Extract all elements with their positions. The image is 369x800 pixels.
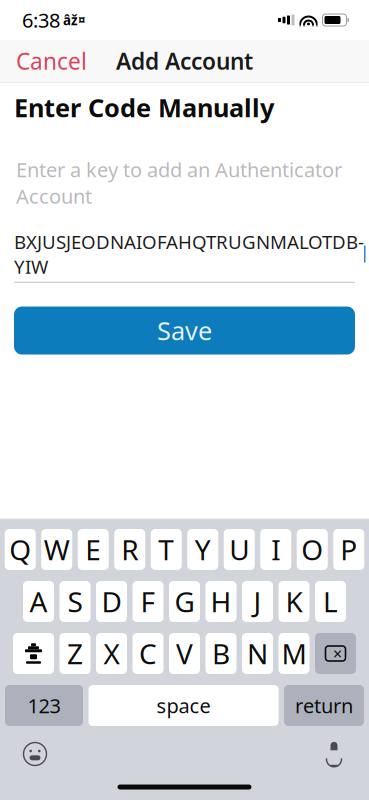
staticText: S	[67, 583, 82, 620]
button[interactable]: A	[23, 581, 54, 622]
staticText: A	[29, 583, 47, 620]
staticText: Y	[195, 531, 211, 568]
button[interactable]: return	[284, 685, 364, 726]
button[interactable]: M	[278, 633, 309, 674]
button[interactable]: Z	[59, 633, 90, 674]
staticText: R	[121, 531, 138, 568]
staticText: Enter a key to add an Authenticator Acco…	[16, 156, 342, 209]
staticText: 123	[27, 692, 60, 719]
staticText: L	[323, 583, 338, 620]
staticText: H	[210, 583, 231, 620]
button[interactable]: P	[333, 529, 364, 570]
button[interactable]: J	[242, 581, 273, 622]
button[interactable]: Cancel	[0, 36, 103, 86]
staticText: V	[176, 635, 193, 672]
button[interactable]: B	[205, 633, 236, 674]
button[interactable]: K	[278, 581, 309, 622]
staticText: W	[44, 531, 70, 568]
button[interactable]: Emoji keyboard	[0, 735, 48, 773]
staticText: Save	[157, 314, 212, 347]
staticText: return	[295, 692, 353, 719]
button[interactable]: Dictation	[323, 735, 369, 773]
button[interactable]: X	[96, 633, 127, 674]
staticText: space	[156, 692, 210, 719]
button[interactable]: Shift	[13, 633, 54, 674]
button[interactable]: E	[78, 529, 109, 570]
staticText: B	[212, 635, 230, 672]
staticText: Add Account	[116, 46, 253, 76]
staticText: âž¤	[63, 11, 86, 29]
staticText: G	[174, 583, 194, 620]
staticText: BXJUSJEODNAIOFAHQTRUGNMALOTDBYIW	[14, 229, 364, 279]
button[interactable]: C	[132, 633, 163, 674]
button[interactable]: O	[297, 529, 328, 570]
button[interactable]: S	[59, 581, 90, 622]
button[interactable]: V	[169, 633, 200, 674]
staticText: O	[301, 531, 323, 568]
button[interactable]: Q	[5, 529, 36, 570]
button[interactable]: Save	[14, 306, 355, 354]
button[interactable]: W	[41, 529, 72, 570]
staticText: Enter Code Manually	[14, 90, 274, 124]
staticText: Z	[67, 635, 83, 672]
staticText: J	[253, 583, 261, 620]
staticText: U	[229, 531, 249, 568]
button[interactable]: 123	[5, 685, 83, 726]
button[interactable]: G	[169, 581, 200, 622]
staticText: I	[271, 531, 280, 568]
button[interactable]: F	[132, 581, 163, 622]
button[interactable]: T	[151, 529, 182, 570]
button[interactable]: L	[315, 581, 346, 622]
button[interactable]: D	[96, 581, 127, 622]
staticText: ×	[333, 643, 342, 664]
staticText: D	[101, 583, 121, 620]
staticText: Q	[9, 531, 31, 568]
button[interactable]: space	[88, 685, 278, 726]
staticText: 6:38	[22, 7, 60, 33]
button[interactable]: Y	[187, 529, 218, 570]
staticText: N	[247, 635, 268, 672]
button[interactable]: H	[205, 581, 236, 622]
staticText: P	[340, 531, 357, 568]
button[interactable]: R	[114, 529, 145, 570]
button[interactable]: U	[224, 529, 255, 570]
staticText: M	[281, 635, 306, 672]
staticText: F	[140, 583, 155, 620]
staticText: K	[285, 583, 302, 620]
staticText: Cancel	[16, 46, 87, 76]
staticText: X	[103, 635, 119, 672]
staticText: E	[85, 531, 101, 568]
button[interactable]: Delete	[315, 633, 356, 674]
staticText: C	[139, 635, 157, 672]
button[interactable]: I	[260, 529, 291, 570]
button[interactable]: N	[242, 633, 273, 674]
staticText: T	[158, 531, 174, 568]
